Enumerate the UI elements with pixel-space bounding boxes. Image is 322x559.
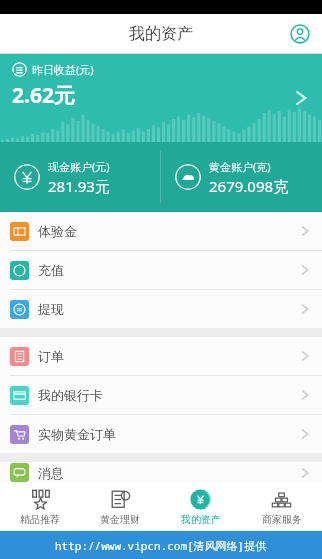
button[interactable]: 商家服务: [241, 483, 322, 531]
staticText: 消息: [38, 465, 64, 481]
button[interactable]: 黄金理财: [80, 483, 160, 531]
button[interactable]: 我的银行卡: [0, 376, 322, 414]
button[interactable]: 精品推荐: [0, 483, 80, 531]
staticText: 我的银行卡: [38, 387, 103, 403]
button[interactable]: 昨日收益(元): [0, 54, 322, 142]
button[interactable]: Account profile: [287, 21, 313, 47]
staticText: 我的资产: [181, 513, 221, 526]
button[interactable]: 体验金: [0, 212, 322, 250]
button[interactable]: 现金账户(元): [0, 142, 160, 212]
staticText: 体验金: [38, 223, 77, 239]
button[interactable]: 订单: [0, 337, 322, 375]
button[interactable]: 黄金账户(克): [161, 142, 322, 212]
staticText: http://www.vipcn.com[清风网络]提供: [55, 538, 267, 553]
staticText: 我的资产: [129, 24, 193, 44]
staticText: 充值: [38, 262, 64, 278]
staticText: 2679.098克: [209, 176, 289, 196]
button[interactable]: 充值: [0, 251, 322, 289]
button[interactable]: 消息: [0, 462, 322, 483]
staticText: 商家服务: [262, 513, 302, 526]
staticText: 订单: [38, 348, 64, 364]
staticText: 现金账户(元): [48, 159, 110, 174]
staticText: 黄金理财: [100, 513, 140, 526]
staticText: 2.62元: [12, 81, 75, 110]
staticText: 昨日收益(元): [32, 62, 94, 77]
staticText: 提现: [38, 301, 64, 317]
button[interactable]: 我的资产: [160, 483, 241, 531]
staticText: 281.93元: [48, 176, 110, 196]
staticText: 精品推荐: [20, 513, 60, 526]
staticText: 实物黄金订单: [38, 426, 116, 442]
button[interactable]: 提现: [0, 290, 322, 328]
staticText: 黄金账户(克): [209, 159, 271, 174]
button[interactable]: 实物黄金订单: [0, 415, 322, 453]
